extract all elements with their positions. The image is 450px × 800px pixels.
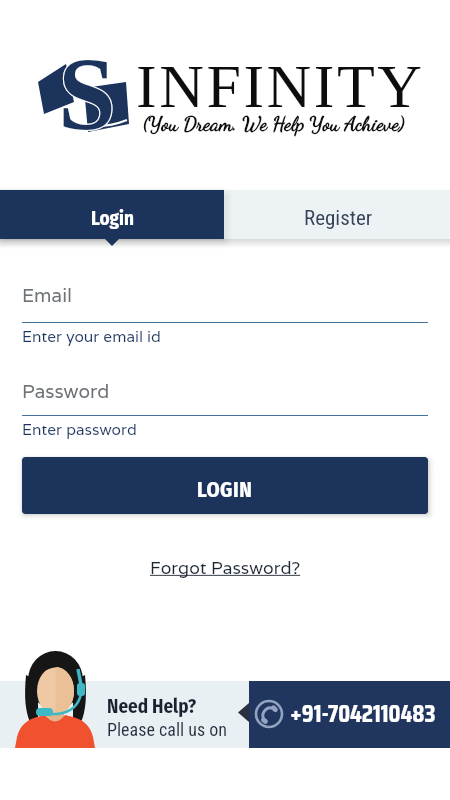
staticText: Login bbox=[91, 207, 134, 230]
staticText: S bbox=[58, 36, 116, 151]
button[interactable]: Register bbox=[226, 190, 450, 239]
staticText: Enter password bbox=[22, 419, 137, 439]
staticText: +91-7042110483 bbox=[290, 694, 436, 733]
staticText: INFINITY bbox=[136, 52, 425, 121]
button[interactable]: Forgot Password? bbox=[150, 556, 301, 579]
button[interactable]: Login bbox=[0, 190, 224, 239]
staticText: Enter your email id bbox=[22, 326, 161, 346]
staticText: (You Dream. We Help You Achieve) bbox=[143, 111, 405, 136]
staticText: S bbox=[58, 35, 116, 150]
staticText: Password bbox=[22, 379, 110, 404]
staticText: LOGIN bbox=[197, 477, 253, 502]
staticText: Register bbox=[304, 206, 373, 231]
staticText: S bbox=[58, 37, 116, 152]
staticText: S bbox=[59, 36, 117, 151]
button[interactable]: +91-7042110483 bbox=[249, 681, 450, 748]
staticText: Email bbox=[22, 283, 73, 308]
staticText: Please call us on bbox=[107, 719, 228, 740]
staticText: S bbox=[57, 36, 115, 151]
staticText: Need Help? bbox=[107, 695, 197, 718]
button[interactable]: LOGIN bbox=[22, 457, 428, 514]
